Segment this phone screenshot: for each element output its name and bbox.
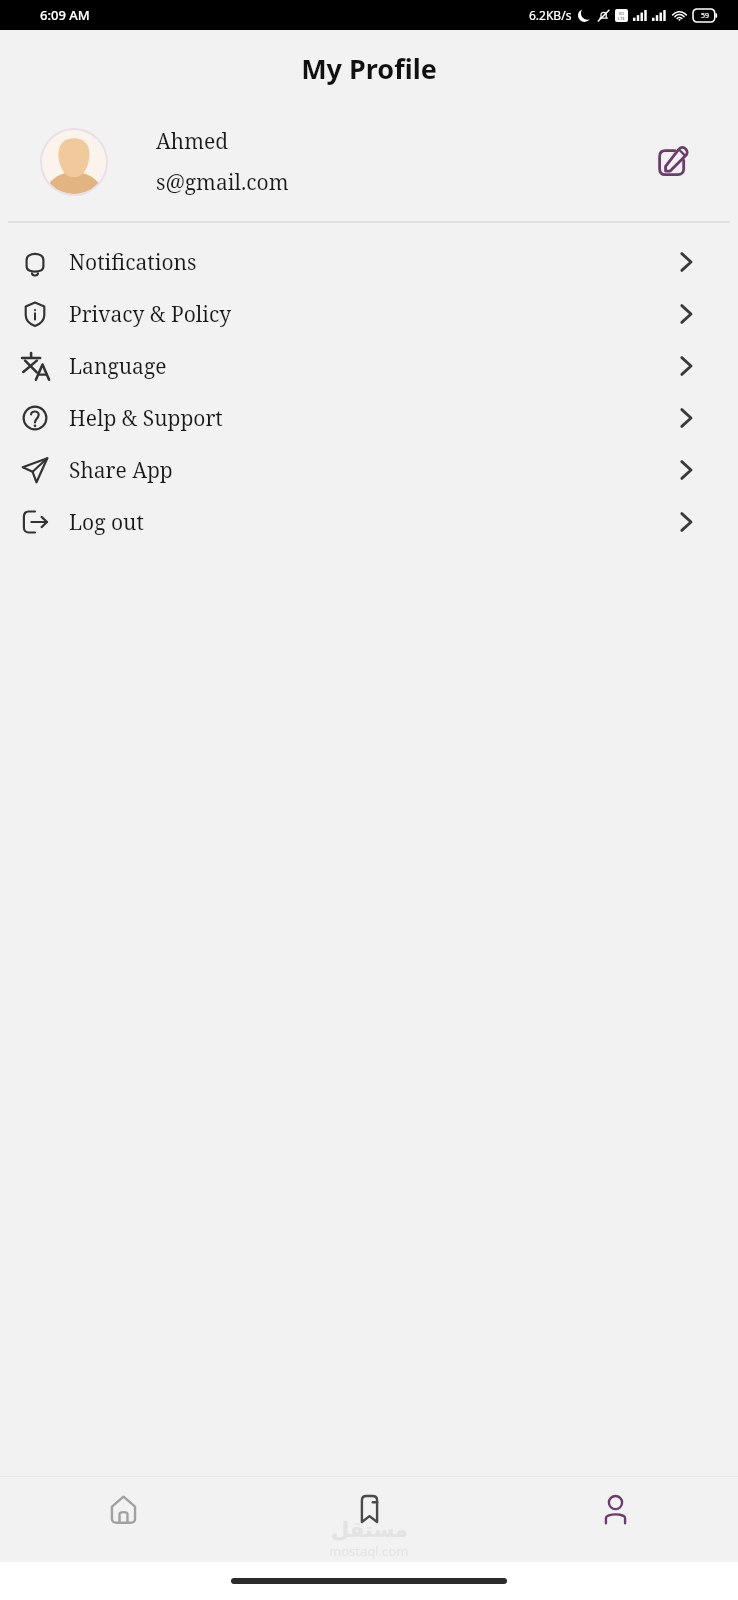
button[interactable]: Bookmarks [246, 1476, 492, 1562]
staticText: Help & Support [69, 404, 223, 433]
button[interactable]: Share App [0, 444, 738, 496]
button[interactable]: Log out [0, 496, 738, 548]
button[interactable]: Notifications [0, 236, 738, 288]
button[interactable]: Edit profile [648, 139, 694, 185]
staticText: Ahmed [156, 127, 229, 156]
staticText: Privacy & Policy [69, 300, 232, 329]
staticText: 59 [701, 11, 710, 21]
button[interactable]: Profile [492, 1476, 738, 1562]
staticText: 6.2KB/s [529, 7, 572, 23]
staticText: VO LTE [618, 11, 625, 21]
staticText: mostaql.com [329, 1542, 409, 1560]
button[interactable]: Language [0, 340, 738, 392]
staticText: مستقل [331, 1518, 408, 1542]
staticText: My Profile [0, 50, 738, 87]
staticText: Notifications [69, 248, 197, 277]
button[interactable]: Privacy & Policy [0, 288, 738, 340]
staticText: s@gmail.com [156, 168, 289, 197]
button[interactable]: Home [0, 1476, 246, 1562]
button[interactable]: Help & Support [0, 392, 738, 444]
staticText: Language [69, 352, 167, 381]
staticText: 6:09 AM [40, 6, 90, 24]
staticText: Log out [69, 508, 144, 537]
staticText: Share App [69, 456, 173, 485]
